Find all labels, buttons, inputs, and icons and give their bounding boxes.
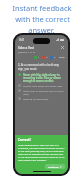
staticText: 0 [46,56,48,59]
staticText: Must yield to vehicles only on your righ… [23,89,65,95]
staticText: Question 1 of 10 [18,51,35,54]
staticText: Take a Test [18,46,35,50]
staticText: When approaching a both way sign at a cr… [18,144,65,162]
staticText: Should slow down but never stop. [23,84,65,87]
staticText: Never yield the right-of-way to oncoming… [23,73,65,82]
staticText: 0 [54,56,56,59]
staticText: with the [14,14,45,24]
staticText: Continue [48,165,59,168]
staticText: Instant feedback [12,3,72,13]
staticText: 1 [38,56,40,59]
button[interactable]: Should slow down but never stop. [18,84,65,87]
button[interactable]: Reverse as instructed. [18,97,65,100]
staticText: 9:41 [19,38,25,42]
staticText: correct [45,14,70,24]
staticText: 2. At a crossroad with a both way sign, … [18,63,65,70]
button[interactable]: Must yield to vehicles only on your righ… [18,89,65,95]
button[interactable]: Close [60,45,65,50]
button[interactable]: Never yield the right-of-way to oncoming… [18,73,65,82]
button[interactable]: Continue [45,164,65,169]
staticText: 00:45 [59,56,65,59]
staticText: Correct! [18,138,31,142]
staticText: answer. [28,25,55,35]
staticText: Reverse as instructed. [23,97,65,100]
